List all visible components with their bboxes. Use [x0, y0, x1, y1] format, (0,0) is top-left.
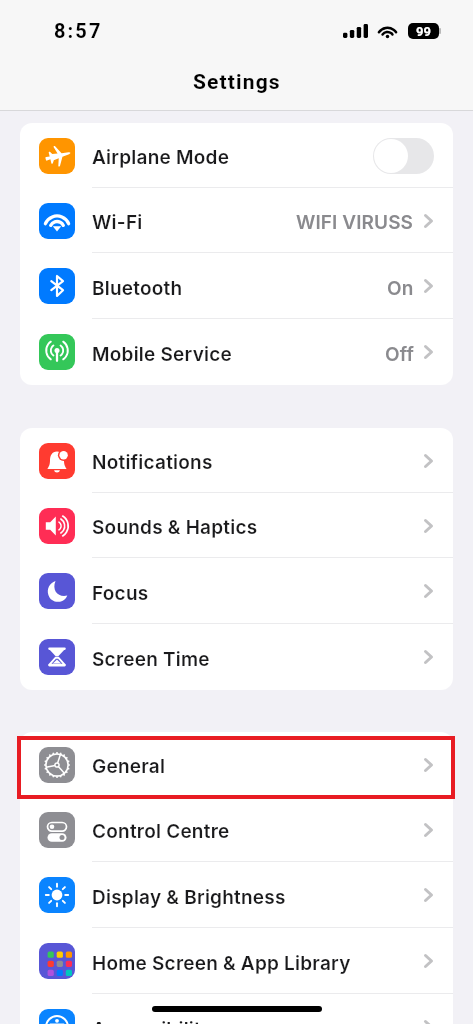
other: Home Screen [39, 943, 75, 979]
other: Accessibility [39, 1009, 75, 1024]
staticText: Notifications [92, 451, 213, 474]
staticText: Home Screen & App Library [92, 952, 351, 975]
staticText: Airplane Mode [92, 146, 230, 169]
button[interactable]: Mobile Service [20, 319, 453, 385]
button[interactable]: Display [20, 862, 453, 928]
other: General [39, 747, 75, 783]
other: Wi-Fi [39, 203, 75, 239]
other: Sounds [39, 508, 75, 544]
staticText: Mobile Service [92, 343, 232, 366]
button[interactable]: General [20, 732, 453, 797]
other: Mobile Service [39, 334, 75, 370]
button[interactable]: Airplane Mode [20, 123, 453, 188]
staticText: Accessibility [92, 1018, 213, 1024]
staticText: General [92, 755, 166, 778]
button[interactable]: Airplane Mode toggle [373, 138, 434, 174]
staticText: Focus [92, 582, 149, 605]
staticText: Bluetooth [92, 277, 183, 300]
other: Screen Time [39, 639, 75, 675]
button[interactable]: Sounds [20, 493, 453, 558]
other: Airplane Mode [39, 138, 75, 174]
staticText: Sounds & Haptics [92, 516, 258, 539]
staticText: Screen Time [92, 648, 210, 671]
staticText: Off [385, 343, 414, 366]
staticText: Display & Brightness [92, 886, 286, 909]
staticText: Settings [193, 70, 281, 95]
button[interactable]: Bluetooth [20, 253, 453, 319]
button[interactable]: Control Centre [20, 797, 453, 862]
other: Notifications [39, 443, 75, 479]
staticText: On [387, 277, 414, 300]
button[interactable]: Home Screen [20, 928, 453, 994]
button[interactable]: Notifications [20, 428, 453, 493]
staticText: WIFI VIRUSS [296, 211, 414, 234]
button[interactable]: Accessibility [20, 994, 453, 1024]
other: Control Centre [39, 812, 75, 848]
staticText: Wi-Fi [92, 211, 143, 234]
button[interactable]: Wi-Fi [20, 188, 453, 253]
button[interactable]: Focus [20, 558, 453, 624]
staticText: 99 [416, 24, 431, 39]
other: Display [39, 877, 75, 913]
button[interactable]: Screen Time [20, 624, 453, 690]
other: Bluetooth [39, 268, 75, 304]
staticText: Control Centre [92, 820, 230, 843]
staticText: 8:57 [54, 19, 103, 42]
other: Focus [39, 573, 75, 609]
